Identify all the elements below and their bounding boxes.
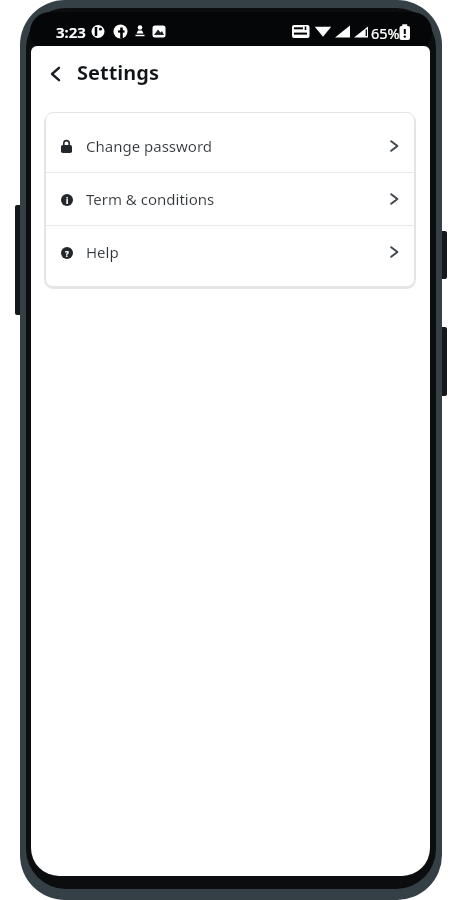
staticText: Term & conditions: [86, 189, 215, 209]
staticText: i: [66, 195, 69, 206]
staticText: 65%: [371, 23, 400, 43]
button[interactable]: [41, 60, 69, 88]
button[interactable]: Change password: [45, 120, 415, 172]
staticText: Help: [86, 242, 119, 262]
button[interactable]: ?: [45, 226, 415, 278]
button[interactable]: i: [45, 173, 415, 225]
staticText: ?: [65, 248, 69, 259]
staticText: Change password: [86, 136, 213, 156]
staticText: 3:23: [56, 22, 86, 42]
staticText: Settings: [77, 59, 159, 86]
